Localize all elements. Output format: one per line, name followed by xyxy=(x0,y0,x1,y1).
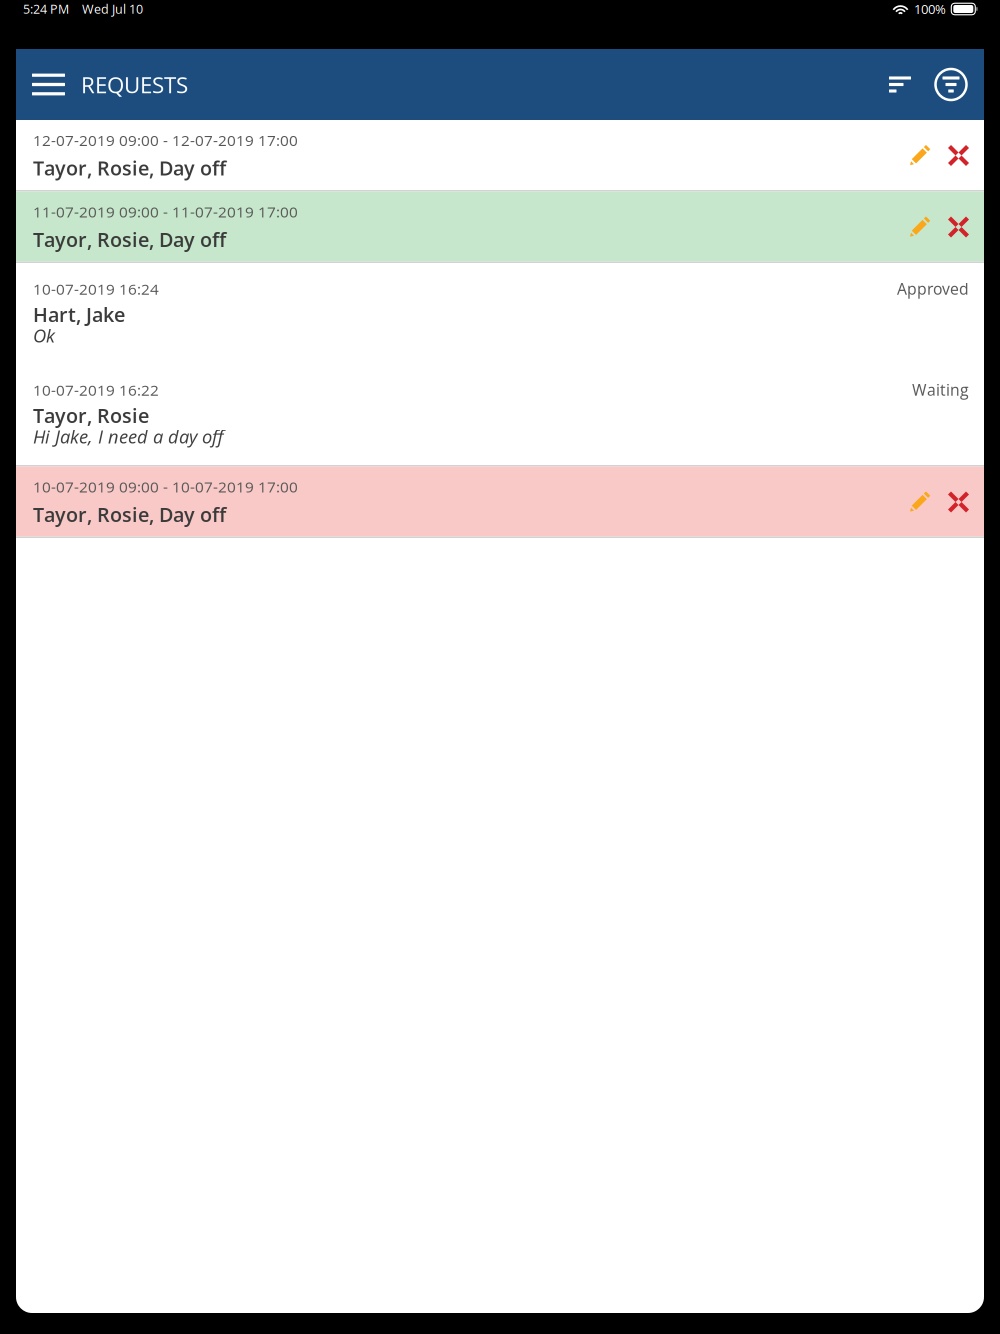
button[interactable]: Edit request xyxy=(909,216,930,237)
staticText: Hi Jake, I need a day off xyxy=(33,424,223,449)
staticText: 10-07-2019 16:22 xyxy=(33,379,159,400)
button[interactable]: Filter xyxy=(935,68,967,100)
staticText: REQUESTS xyxy=(81,69,188,100)
staticText: 10-07-2019 09:00 - 10-07-2019 17:00 xyxy=(33,476,298,497)
button[interactable]: Sort xyxy=(889,73,911,96)
button[interactable]: Delete request xyxy=(948,145,969,166)
staticText: Wed Jul 10 xyxy=(82,0,143,18)
staticText: 12-07-2019 09:00 - 12-07-2019 17:00 xyxy=(33,130,298,150)
staticText: Tayor, Rosie, Day off xyxy=(33,154,226,181)
button[interactable]: 11-07-2019 09:00 - 11-07-2019 17:00 xyxy=(16,191,984,261)
staticText: Tayor, Rosie, Day off xyxy=(33,501,226,528)
staticText: Tayor, Rosie, Day off xyxy=(33,226,226,253)
button[interactable]: 12-07-2019 09:00 - 12-07-2019 17:00 xyxy=(16,120,984,190)
button[interactable]: 10-07-2019 16:24 xyxy=(16,263,984,364)
staticText: Tayor, Rosie xyxy=(33,402,149,429)
button[interactable]: Delete request xyxy=(948,491,969,512)
button[interactable]: Edit request xyxy=(909,145,930,166)
button[interactable]: Menu xyxy=(32,73,65,95)
button[interactable]: 10-07-2019 09:00 - 10-07-2019 17:00 xyxy=(16,466,984,536)
staticText: Waiting xyxy=(912,379,969,400)
staticText: 11-07-2019 09:00 - 11-07-2019 17:00 xyxy=(33,201,298,222)
button[interactable]: Edit request xyxy=(909,491,930,512)
staticText: 100% xyxy=(914,0,946,18)
staticText: Ok xyxy=(33,323,55,348)
staticText: 10-07-2019 16:24 xyxy=(33,278,159,299)
staticText: 5:24 PM xyxy=(23,0,69,18)
staticText: Approved xyxy=(897,278,969,299)
button[interactable]: Delete request xyxy=(948,216,969,237)
button[interactable]: 10-07-2019 16:22 xyxy=(16,364,984,465)
staticText: Hart, Jake xyxy=(33,301,125,328)
